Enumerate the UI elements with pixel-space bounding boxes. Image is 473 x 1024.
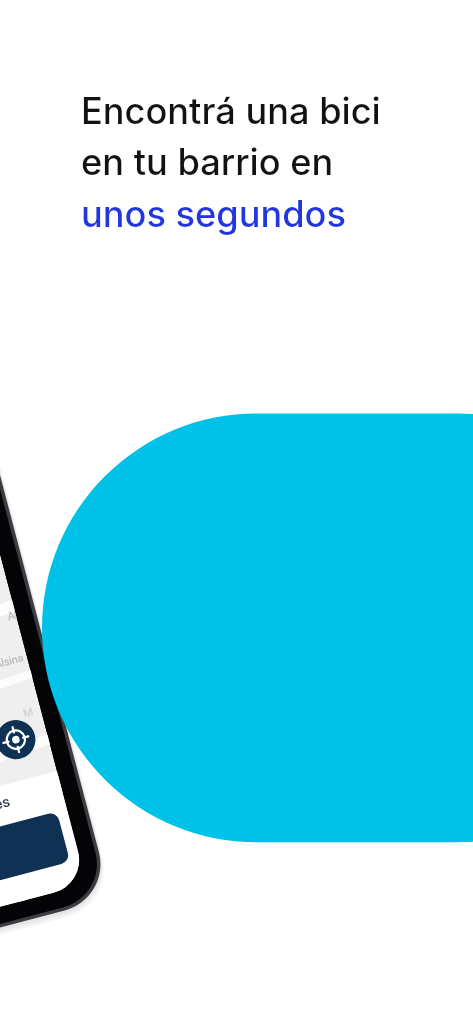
button[interactable] <box>0 789 76 907</box>
other: Ilustración: mapa de estaciones de bicic… <box>0 0 473 1024</box>
staticText: Encontrá una bici en tu barrio en unos s… <box>81 89 381 236</box>
button[interactable]: Mi ubicación <box>0 720 18 760</box>
